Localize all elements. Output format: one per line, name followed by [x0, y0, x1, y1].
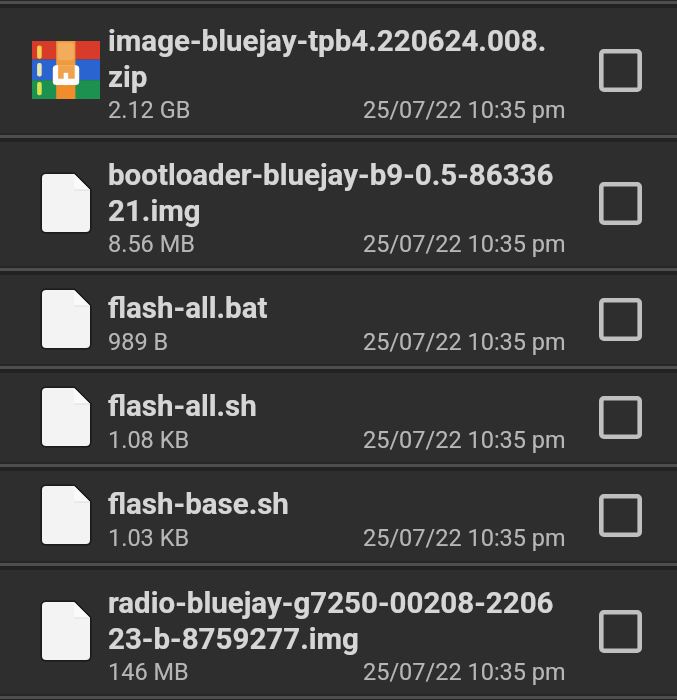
button[interactable]: flash-all.sh — [0, 369, 677, 464]
button[interactable]: flash-base.sh — [0, 467, 677, 563]
staticText: 25/07/22 10:35 pm — [363, 658, 566, 686]
staticText: 25/07/22 10:35 pm — [363, 96, 566, 124]
button[interactable]: radio-bluejay-g7250-00208-2206 23-b-8759… — [0, 566, 677, 696]
staticText: 2.12 GB — [108, 96, 191, 124]
staticText: 1.08 KB — [108, 426, 190, 454]
button[interactable]: Select file — [592, 175, 648, 231]
staticText: radio-bluejay-g7250-00208-2206 23-b-8759… — [108, 586, 554, 656]
staticText: 25/07/22 10:35 pm — [363, 524, 566, 552]
staticText: flash-all.sh — [108, 389, 257, 424]
staticText: 146 MB — [108, 658, 189, 686]
staticText: 989 B — [108, 328, 169, 356]
staticText: flash-base.sh — [108, 487, 289, 522]
staticText: flash-all.bat — [108, 291, 268, 326]
button[interactable]: bootloader-bluejay-b9-0.5-86336 21.img — [0, 138, 677, 268]
button[interactable]: Select file — [592, 389, 648, 445]
button[interactable]: flash-all.bat — [0, 271, 677, 366]
button[interactable]: Select file — [592, 487, 648, 543]
staticText: 25/07/22 10:35 pm — [363, 426, 566, 454]
button[interactable]: image-bluejay-tpb4.220624.008. zip — [0, 4, 677, 135]
staticText: bootloader-bluejay-b9-0.5-86336 21.img — [108, 158, 554, 228]
staticText: 25/07/22 10:35 pm — [363, 230, 566, 258]
staticText: 8.56 MB — [108, 230, 195, 258]
staticText: image-bluejay-tpb4.220624.008. zip — [108, 24, 547, 94]
button[interactable]: Select file — [592, 42, 648, 98]
button[interactable]: Select file — [592, 603, 648, 659]
button[interactable]: Select file — [592, 291, 648, 347]
staticText: 25/07/22 10:35 pm — [363, 328, 566, 356]
staticText: 1.03 KB — [108, 524, 190, 552]
